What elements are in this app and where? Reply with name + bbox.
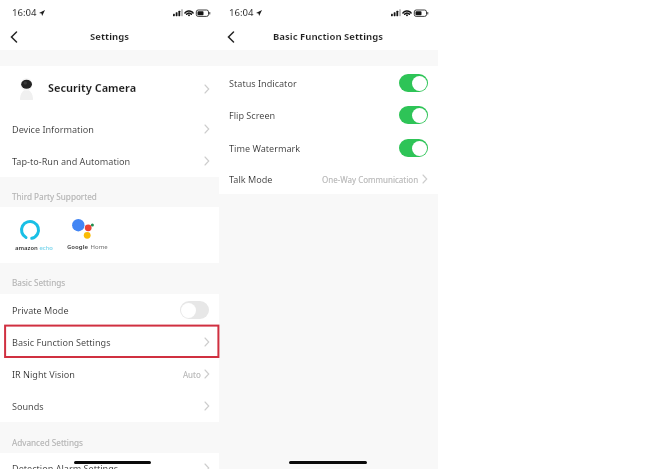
staticText: Third Party Supported: [12, 191, 97, 202]
staticText: Sounds: [12, 400, 44, 412]
staticText: One-Way Communication: [322, 174, 419, 185]
button[interactable]: Security Camera: [0, 66, 219, 112]
button[interactable]: Status Indicator: [217, 66, 438, 99]
button[interactable]: [399, 74, 428, 92]
button[interactable]: Flip Screen: [217, 99, 438, 131]
staticText: Home: [89, 243, 108, 251]
button[interactable]: Tap-to-Run and Automation: [0, 145, 219, 177]
staticText: Advanced Settings: [12, 437, 83, 448]
button[interactable]: Back: [221, 27, 240, 46]
staticText: Google: [67, 243, 89, 251]
staticText: echo: [38, 244, 53, 252]
staticText: Tap-to-Run and Automation: [12, 155, 131, 167]
button[interactable]: Time Watermark: [217, 131, 438, 164]
staticText: 16:04: [12, 6, 37, 19]
button[interactable]: Back: [4, 27, 23, 46]
button[interactable]: [399, 106, 428, 124]
staticText: Detection Alarm Settings: [12, 462, 119, 469]
staticText: 16:04: [229, 6, 254, 19]
staticText: Status Indicator: [229, 77, 297, 89]
staticText: Flip Screen: [229, 109, 276, 121]
button[interactable]: Detection Alarm Settings: [0, 453, 219, 469]
button[interactable]: IR Night Vision: [0, 358, 219, 390]
button[interactable]: [399, 139, 428, 157]
button[interactable]: Sounds: [0, 390, 219, 422]
button[interactable]: [180, 301, 209, 319]
button[interactable]: Google: [62, 219, 122, 257]
staticText: Basic Function Settings: [12, 336, 111, 348]
staticText: Time Watermark: [229, 142, 301, 154]
staticText: Security Camera: [48, 80, 137, 95]
button[interactable]: Basic Function Settings: [0, 326, 219, 358]
button[interactable]: Private Mode: [0, 294, 219, 326]
staticText: Device Information: [12, 123, 94, 135]
staticText: Talk Mode: [229, 173, 273, 185]
staticText: Auto: [183, 369, 201, 380]
staticText: Basic Function Settings: [273, 30, 383, 43]
button[interactable]: amazon: [10, 220, 70, 258]
staticText: IR Night Vision: [12, 368, 75, 380]
button[interactable]: Talk Mode: [217, 164, 438, 194]
staticText: amazon: [15, 244, 38, 252]
button[interactable]: Device Information: [0, 112, 219, 145]
staticText: Settings: [90, 30, 129, 43]
staticText: Basic Settings: [12, 277, 66, 288]
staticText: Private Mode: [12, 304, 69, 316]
